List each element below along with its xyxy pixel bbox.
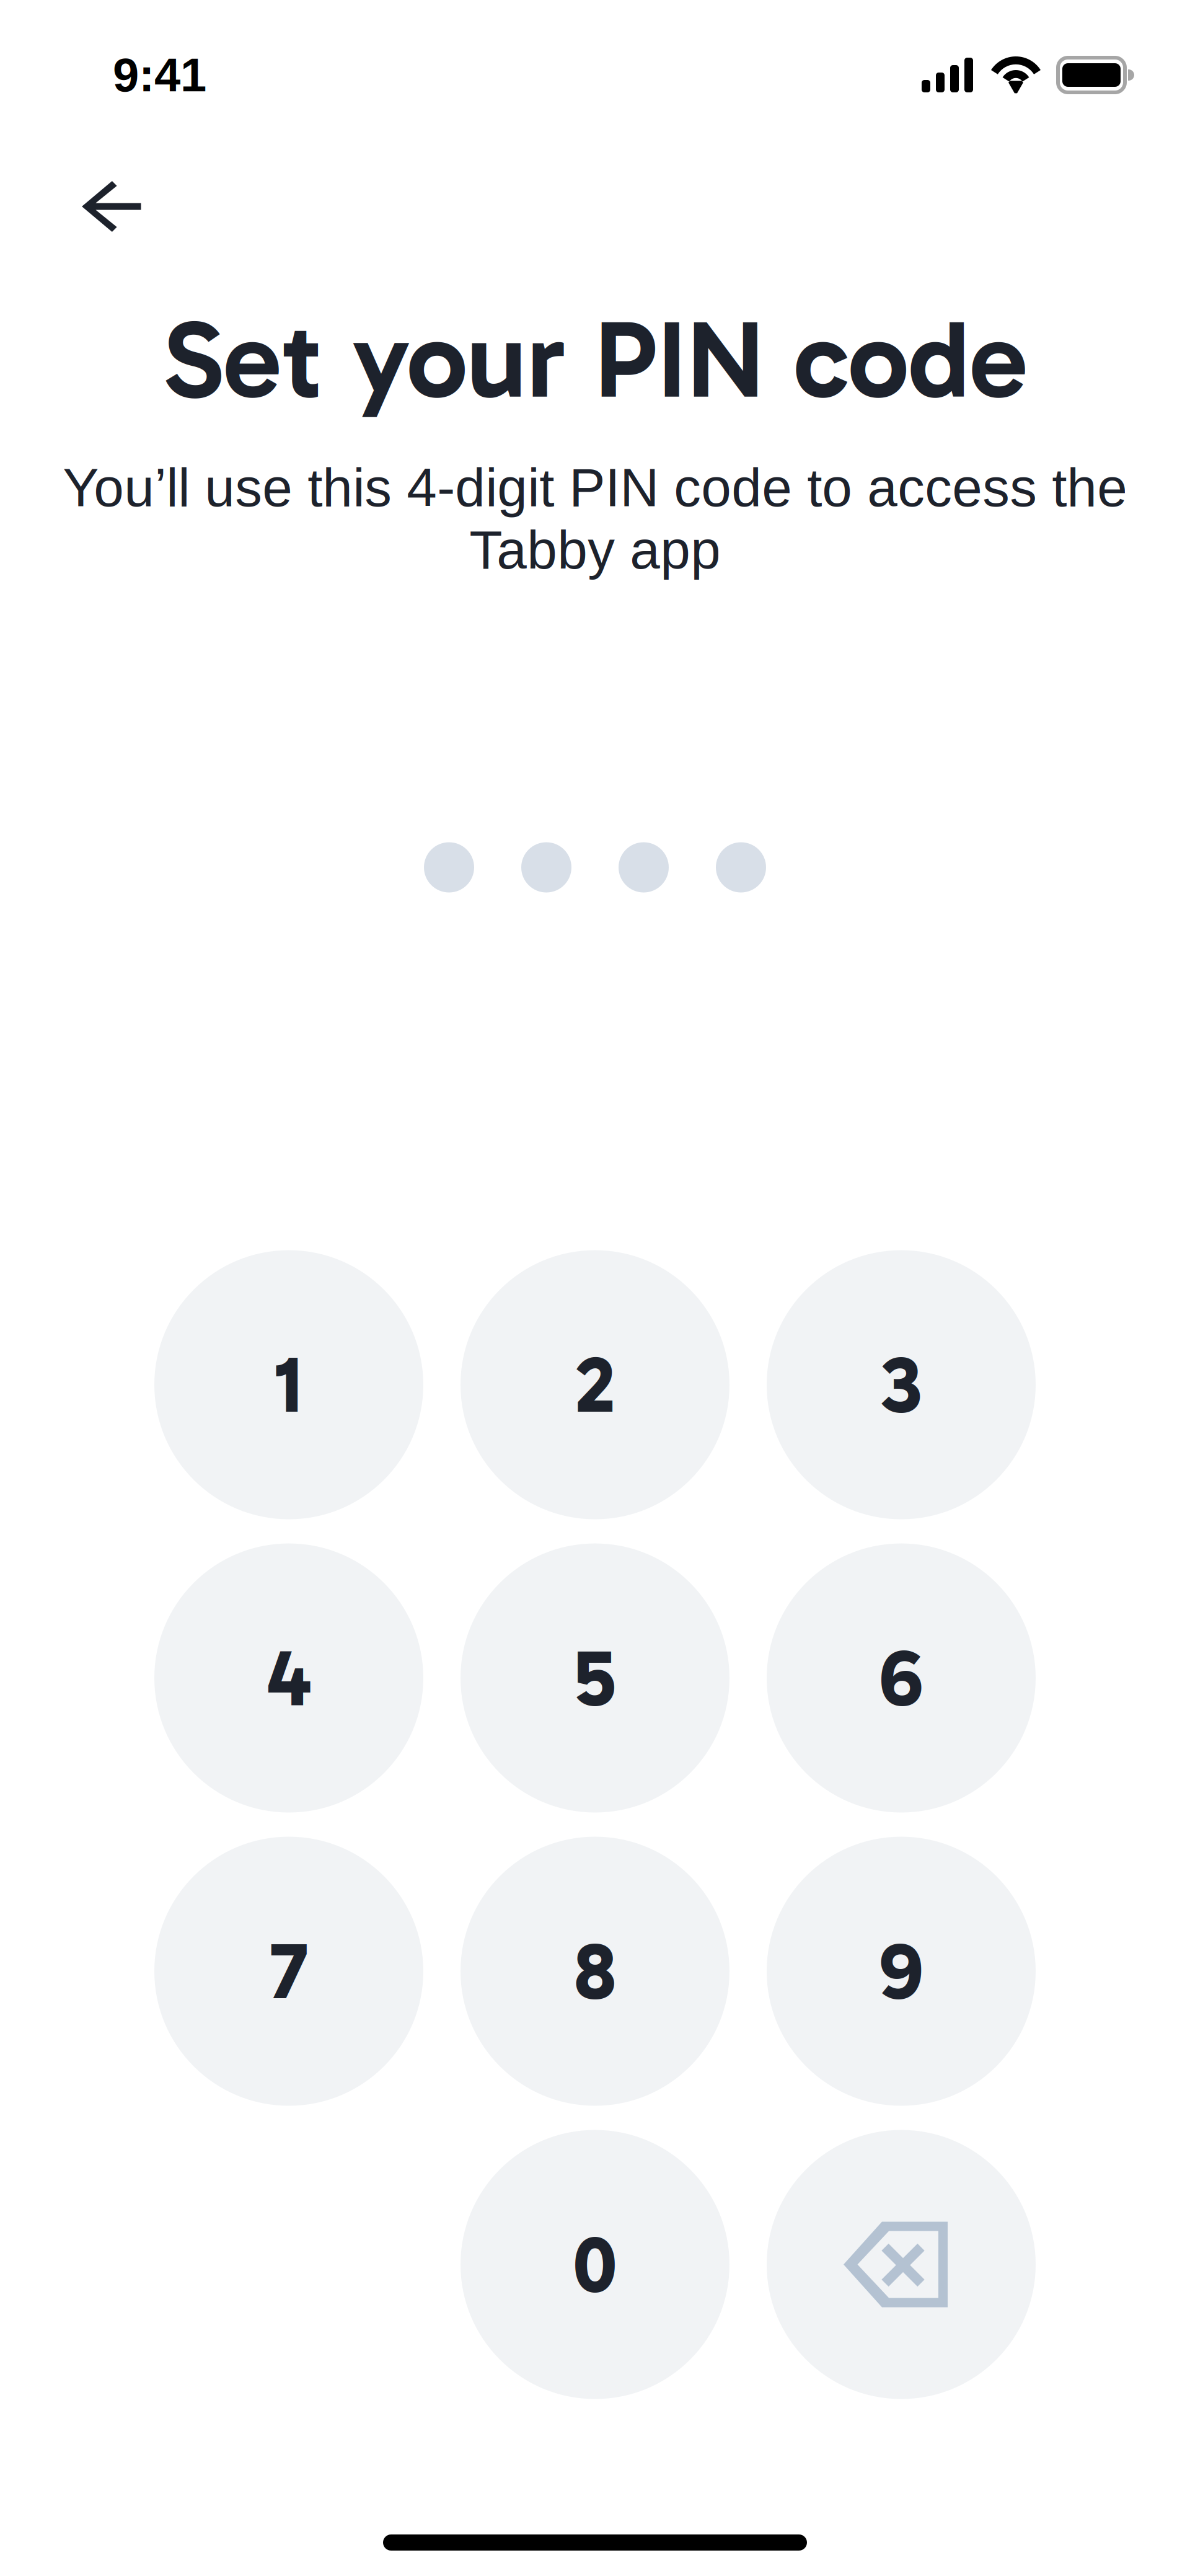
button[interactable]: Delete bbox=[767, 2130, 1036, 2399]
staticText: 6 bbox=[879, 1630, 923, 1726]
staticText: 4 bbox=[266, 1630, 312, 1726]
button[interactable]: 7 bbox=[154, 1837, 423, 2106]
button[interactable]: 4 bbox=[154, 1543, 423, 1812]
staticText: 7 bbox=[269, 1924, 309, 2019]
staticText: 1 bbox=[274, 1337, 303, 1432]
staticText: 2 bbox=[575, 1337, 615, 1432]
staticText: 0 bbox=[573, 2217, 617, 2312]
button[interactable]: 1 bbox=[154, 1250, 423, 1519]
button[interactable]: 3 bbox=[767, 1250, 1036, 1519]
staticText: You’ll use this 4-digit PIN code to acce… bbox=[63, 457, 1127, 580]
button[interactable]: 0 bbox=[461, 2130, 729, 2399]
staticText: 8 bbox=[573, 1924, 617, 2019]
staticText: 9 bbox=[879, 1924, 923, 2019]
button[interactable]: Back bbox=[0, 150, 166, 248]
staticText: 3 bbox=[880, 1337, 922, 1432]
button[interactable]: 5 bbox=[461, 1543, 729, 1812]
staticText: 9:41 bbox=[113, 49, 206, 101]
button[interactable]: 8 bbox=[461, 1837, 729, 2106]
button[interactable]: 6 bbox=[767, 1543, 1036, 1812]
staticText: 5 bbox=[574, 1630, 616, 1726]
button[interactable]: 2 bbox=[461, 1250, 729, 1519]
staticText: Set your PIN code bbox=[163, 294, 1027, 425]
button[interactable]: 9 bbox=[767, 1837, 1036, 2106]
